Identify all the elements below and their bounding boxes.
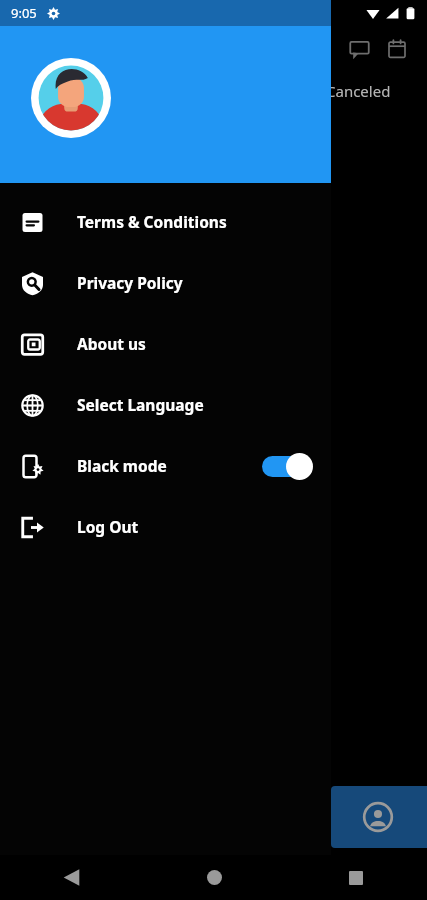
staticText: Terms & Conditions xyxy=(77,211,227,232)
button[interactable]: Back xyxy=(0,855,143,900)
staticText: Select Language xyxy=(77,394,204,415)
button[interactable]: Select Language xyxy=(0,374,331,435)
button[interactable]: Messages xyxy=(340,30,378,68)
button[interactable]: About us xyxy=(0,313,331,374)
button[interactable]: Privacy Policy xyxy=(0,252,331,313)
staticText: About us xyxy=(77,333,146,354)
button[interactable]: Profile xyxy=(331,786,427,848)
staticText: 9:05 xyxy=(11,4,37,22)
staticText: Black mode xyxy=(77,455,167,476)
button[interactable]: Log Out xyxy=(0,496,331,557)
staticText: Canceled xyxy=(326,81,391,101)
button[interactable]: Home xyxy=(143,855,285,900)
staticText: Privacy Policy xyxy=(77,272,183,293)
button[interactable]: Terms & Conditions xyxy=(0,191,331,252)
button[interactable]: Calendar xyxy=(378,30,416,68)
button[interactable]: Recents xyxy=(285,855,427,900)
button[interactable]: Black mode xyxy=(0,435,331,496)
staticText: Log Out xyxy=(77,516,139,537)
